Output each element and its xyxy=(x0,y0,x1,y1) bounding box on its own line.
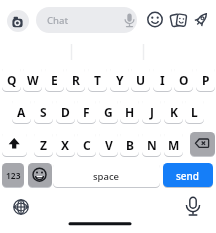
button[interactable]: N xyxy=(142,132,161,156)
staticText: space xyxy=(93,170,120,183)
staticText: X xyxy=(61,137,70,153)
staticText: T xyxy=(94,72,101,88)
staticText: W xyxy=(27,72,39,88)
staticText: M xyxy=(168,137,180,153)
button[interactable]: X xyxy=(56,132,75,156)
button[interactable]: L xyxy=(185,99,204,123)
button[interactable]: K xyxy=(164,99,183,123)
button[interactable]: Y xyxy=(110,67,129,91)
staticText: E xyxy=(51,72,58,88)
staticText: N xyxy=(147,137,157,153)
button[interactable]: Q xyxy=(2,67,21,91)
button[interactable]: 123 xyxy=(2,163,24,187)
button[interactable]: F xyxy=(77,99,96,123)
button[interactable]: H xyxy=(120,99,139,123)
button[interactable]: I xyxy=(153,67,172,91)
staticText: 123 xyxy=(6,170,21,182)
staticText: Y xyxy=(116,72,124,88)
button[interactable]: space xyxy=(53,163,160,187)
staticText: D xyxy=(61,104,70,120)
staticText: Z xyxy=(40,137,47,153)
button[interactable]: S xyxy=(34,99,53,123)
button[interactable]: E xyxy=(45,67,64,91)
staticText: I xyxy=(160,72,165,88)
button[interactable]: O xyxy=(174,67,193,91)
staticText: Chat xyxy=(47,14,69,27)
button[interactable]: A xyxy=(12,99,31,123)
button[interactable]: send xyxy=(163,163,213,187)
staticText: V xyxy=(105,137,113,153)
staticText: G xyxy=(104,104,113,120)
staticText: Q xyxy=(7,72,17,88)
button[interactable]: D xyxy=(56,99,75,123)
button[interactable] xyxy=(28,163,52,187)
button[interactable]: B xyxy=(120,132,139,156)
button[interactable]: W xyxy=(23,67,42,91)
button[interactable] xyxy=(2,132,27,156)
staticText: S xyxy=(40,104,47,120)
staticText: L xyxy=(191,104,198,120)
staticText: P xyxy=(202,72,210,88)
staticText: H xyxy=(125,104,135,120)
button[interactable]: J xyxy=(142,99,161,123)
button[interactable]: M xyxy=(164,132,183,156)
button[interactable] xyxy=(7,10,29,32)
button[interactable]: G xyxy=(99,99,118,123)
staticText: send xyxy=(176,169,200,183)
staticText: K xyxy=(170,104,178,120)
staticText: F xyxy=(83,104,90,120)
staticText: U xyxy=(136,72,146,88)
staticText: C xyxy=(83,137,91,153)
staticText: A xyxy=(17,104,26,120)
button[interactable]: R xyxy=(66,67,85,91)
staticText: O xyxy=(179,72,189,88)
button[interactable]: C xyxy=(77,132,96,156)
button[interactable]: T xyxy=(88,67,107,91)
button[interactable] xyxy=(190,132,215,156)
button[interactable]: P xyxy=(196,67,215,91)
staticText: R xyxy=(72,72,80,88)
button[interactable]: Chat xyxy=(36,7,137,33)
button[interactable]: Z xyxy=(34,132,53,156)
staticText: B xyxy=(126,137,134,153)
staticText: J xyxy=(150,104,154,120)
button[interactable]: V xyxy=(99,132,118,156)
button[interactable]: U xyxy=(131,67,150,91)
